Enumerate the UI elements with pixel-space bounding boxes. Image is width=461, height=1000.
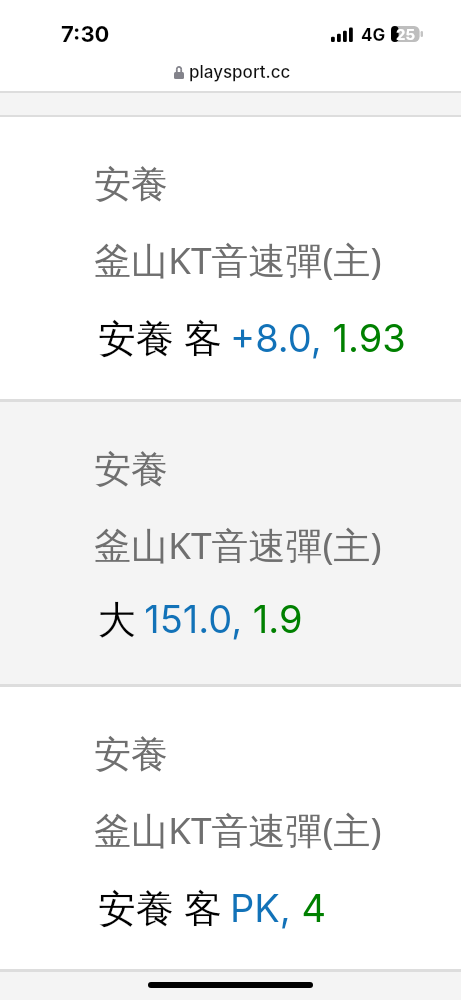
staticText: 安養 <box>94 161 168 208</box>
staticText: 釜山KT音速彈(主) <box>94 804 382 855</box>
staticText: 25 <box>396 25 416 41</box>
staticText: 7:30 <box>61 21 110 48</box>
staticText: 大 151.0, 1.9 <box>98 596 303 644</box>
staticText: 4G <box>361 25 386 46</box>
button[interactable]: Address bar, playsport.cc <box>0 55 461 91</box>
staticText: 安養 <box>94 731 168 778</box>
button[interactable]: 安養 <box>0 402 461 684</box>
button[interactable]: 安養 <box>0 117 461 399</box>
staticText: 釜山KT音速彈(主) <box>94 519 382 570</box>
other: Cellular signal strength <box>331 27 353 42</box>
other: Battery 25 percent <box>391 26 423 42</box>
button[interactable]: 安養 <box>0 687 461 969</box>
staticText: 釜山KT音速彈(主) <box>94 234 382 285</box>
staticText: 安養 客 PK, 4 <box>98 881 327 933</box>
staticText: playsport.cc <box>189 62 291 83</box>
staticText: 安養 <box>94 446 168 493</box>
staticText: 安養 客 +8.0, 1.93 <box>98 311 406 363</box>
